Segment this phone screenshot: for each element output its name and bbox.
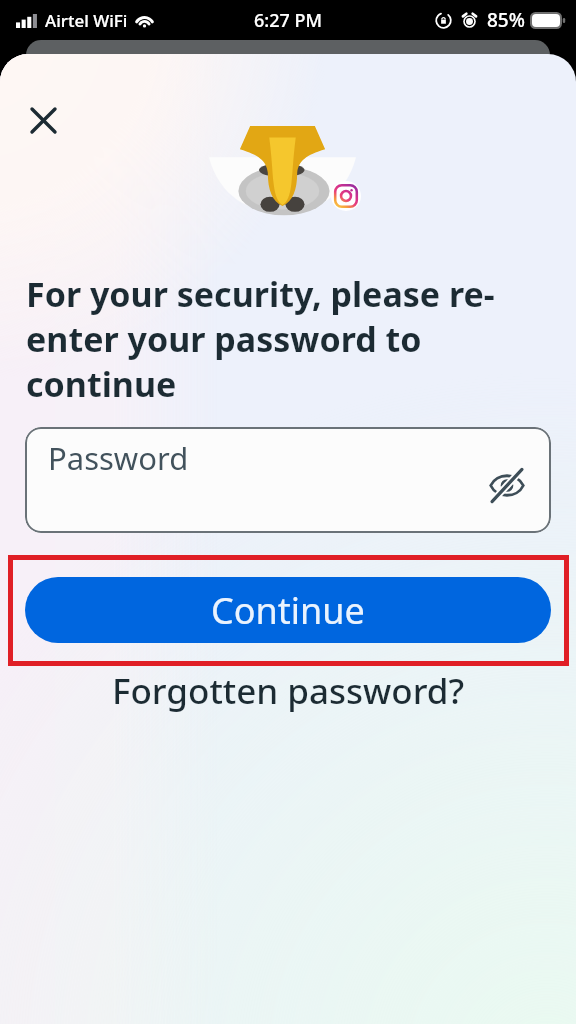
staticText: Password (48, 437, 189, 479)
staticText: 6:27 PM (254, 8, 322, 33)
button[interactable]: Forgotten password? (102, 663, 475, 719)
staticText: 85% (487, 7, 525, 33)
button[interactable]: Password (25, 427, 551, 533)
staticText: Forgotten password? (112, 667, 465, 715)
button[interactable]: Close (21, 98, 65, 142)
staticText: For your security, please re- enter your… (26, 271, 566, 407)
button[interactable]: Continue (25, 577, 551, 643)
staticText: Airtel WiFi (45, 9, 128, 32)
staticText: Continue (211, 586, 365, 635)
button[interactable]: Show password (487, 465, 527, 505)
